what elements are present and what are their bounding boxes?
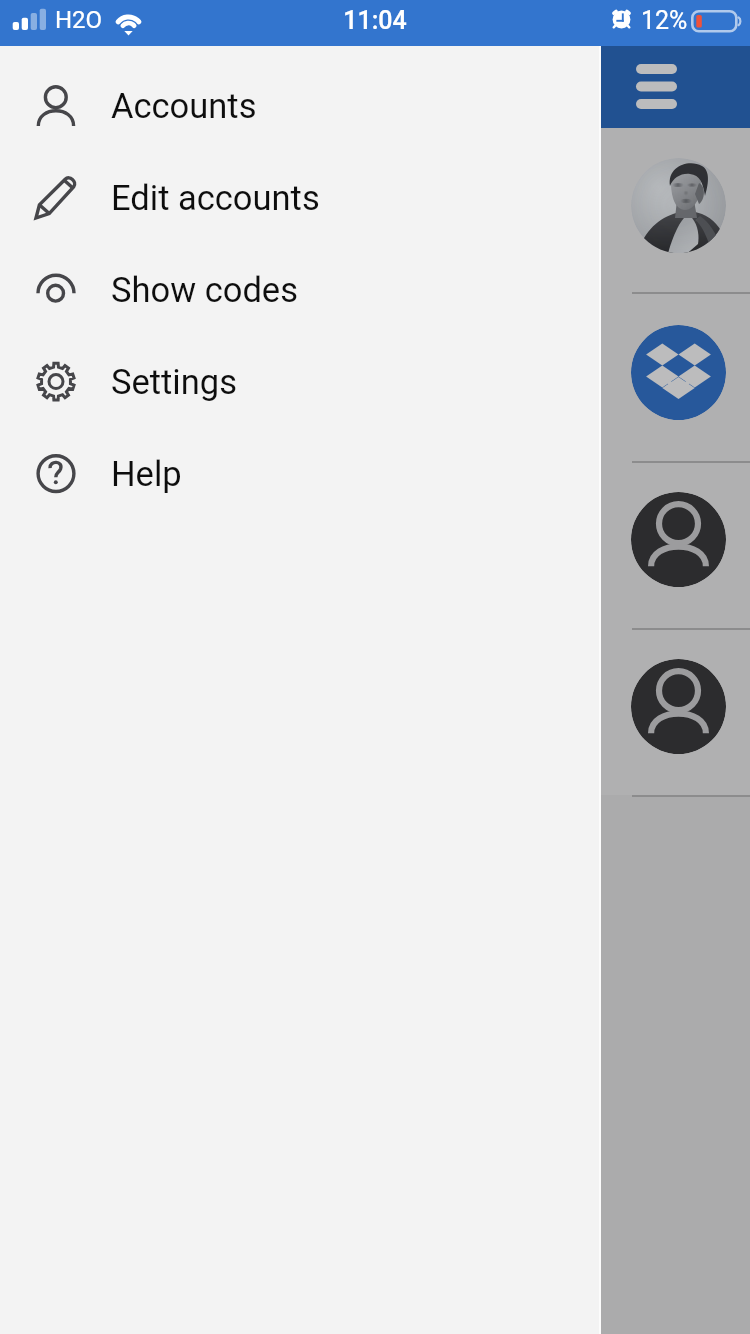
staticText: Accounts	[111, 86, 257, 126]
staticText: 12%	[641, 6, 688, 35]
button[interactable]: Show codes	[0, 244, 600, 336]
staticText: 11:04	[0, 6, 750, 35]
button[interactable]: Other account	[631, 659, 726, 754]
staticText: Show codes	[111, 270, 298, 310]
button[interactable]: Work account	[631, 492, 726, 587]
button[interactable]: Dropbox account	[631, 325, 726, 420]
button[interactable]: Personal account	[631, 158, 726, 253]
staticText: Edit accounts	[111, 178, 320, 218]
button[interactable]: Accounts	[0, 60, 600, 152]
button[interactable]: Edit accounts	[0, 152, 600, 244]
button[interactable]: Open navigation menu	[626, 56, 692, 118]
staticText: H2O	[55, 6, 103, 34]
staticText: Help	[111, 454, 182, 494]
button[interactable]: Help	[0, 428, 600, 520]
button[interactable]: Settings	[0, 336, 600, 428]
staticText: Settings	[111, 362, 237, 402]
